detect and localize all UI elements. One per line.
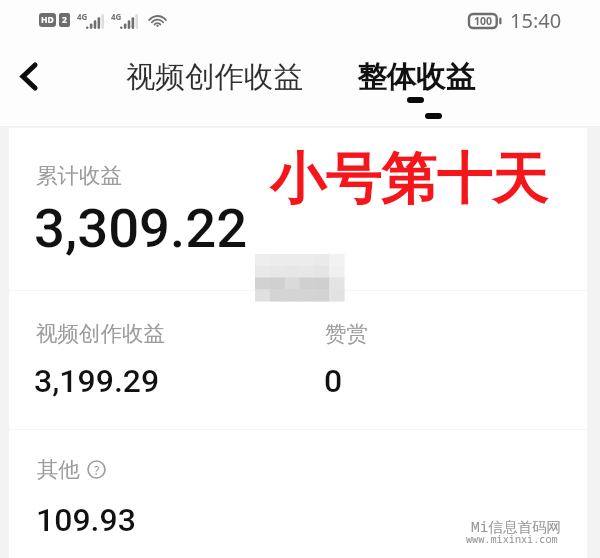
button[interactable]: 视频创作收益 xyxy=(126,59,303,96)
staticText: 小号第十天 xyxy=(270,145,548,215)
staticText: 3,199.29 xyxy=(34,362,160,400)
staticText: Mi信息首码网 xyxy=(471,516,561,536)
staticText: 赞赏 xyxy=(325,320,368,347)
staticText: 0 xyxy=(324,362,343,400)
button[interactable]: Back xyxy=(6,53,52,99)
staticText: 15:40 xyxy=(510,7,562,34)
staticText: 视频创作收益 xyxy=(36,320,165,347)
staticText: 2 xyxy=(62,14,67,26)
button[interactable]: 整体收益 xyxy=(357,59,475,96)
staticText: 视频创作收益 xyxy=(126,59,303,96)
staticText: www.mixinxi.com xyxy=(466,532,558,546)
staticText: 累计收益 xyxy=(36,162,122,189)
staticText: 4G xyxy=(77,11,88,22)
staticText: ? xyxy=(94,462,100,478)
staticText: HD xyxy=(41,14,54,26)
staticText: 整体收益 xyxy=(357,59,475,96)
staticText: 其他 xyxy=(37,456,80,483)
staticText: 4G xyxy=(111,11,122,22)
staticText: 109.93 xyxy=(36,501,136,539)
staticText: 3,309.22 xyxy=(34,196,248,260)
staticText: 100 xyxy=(474,14,493,28)
